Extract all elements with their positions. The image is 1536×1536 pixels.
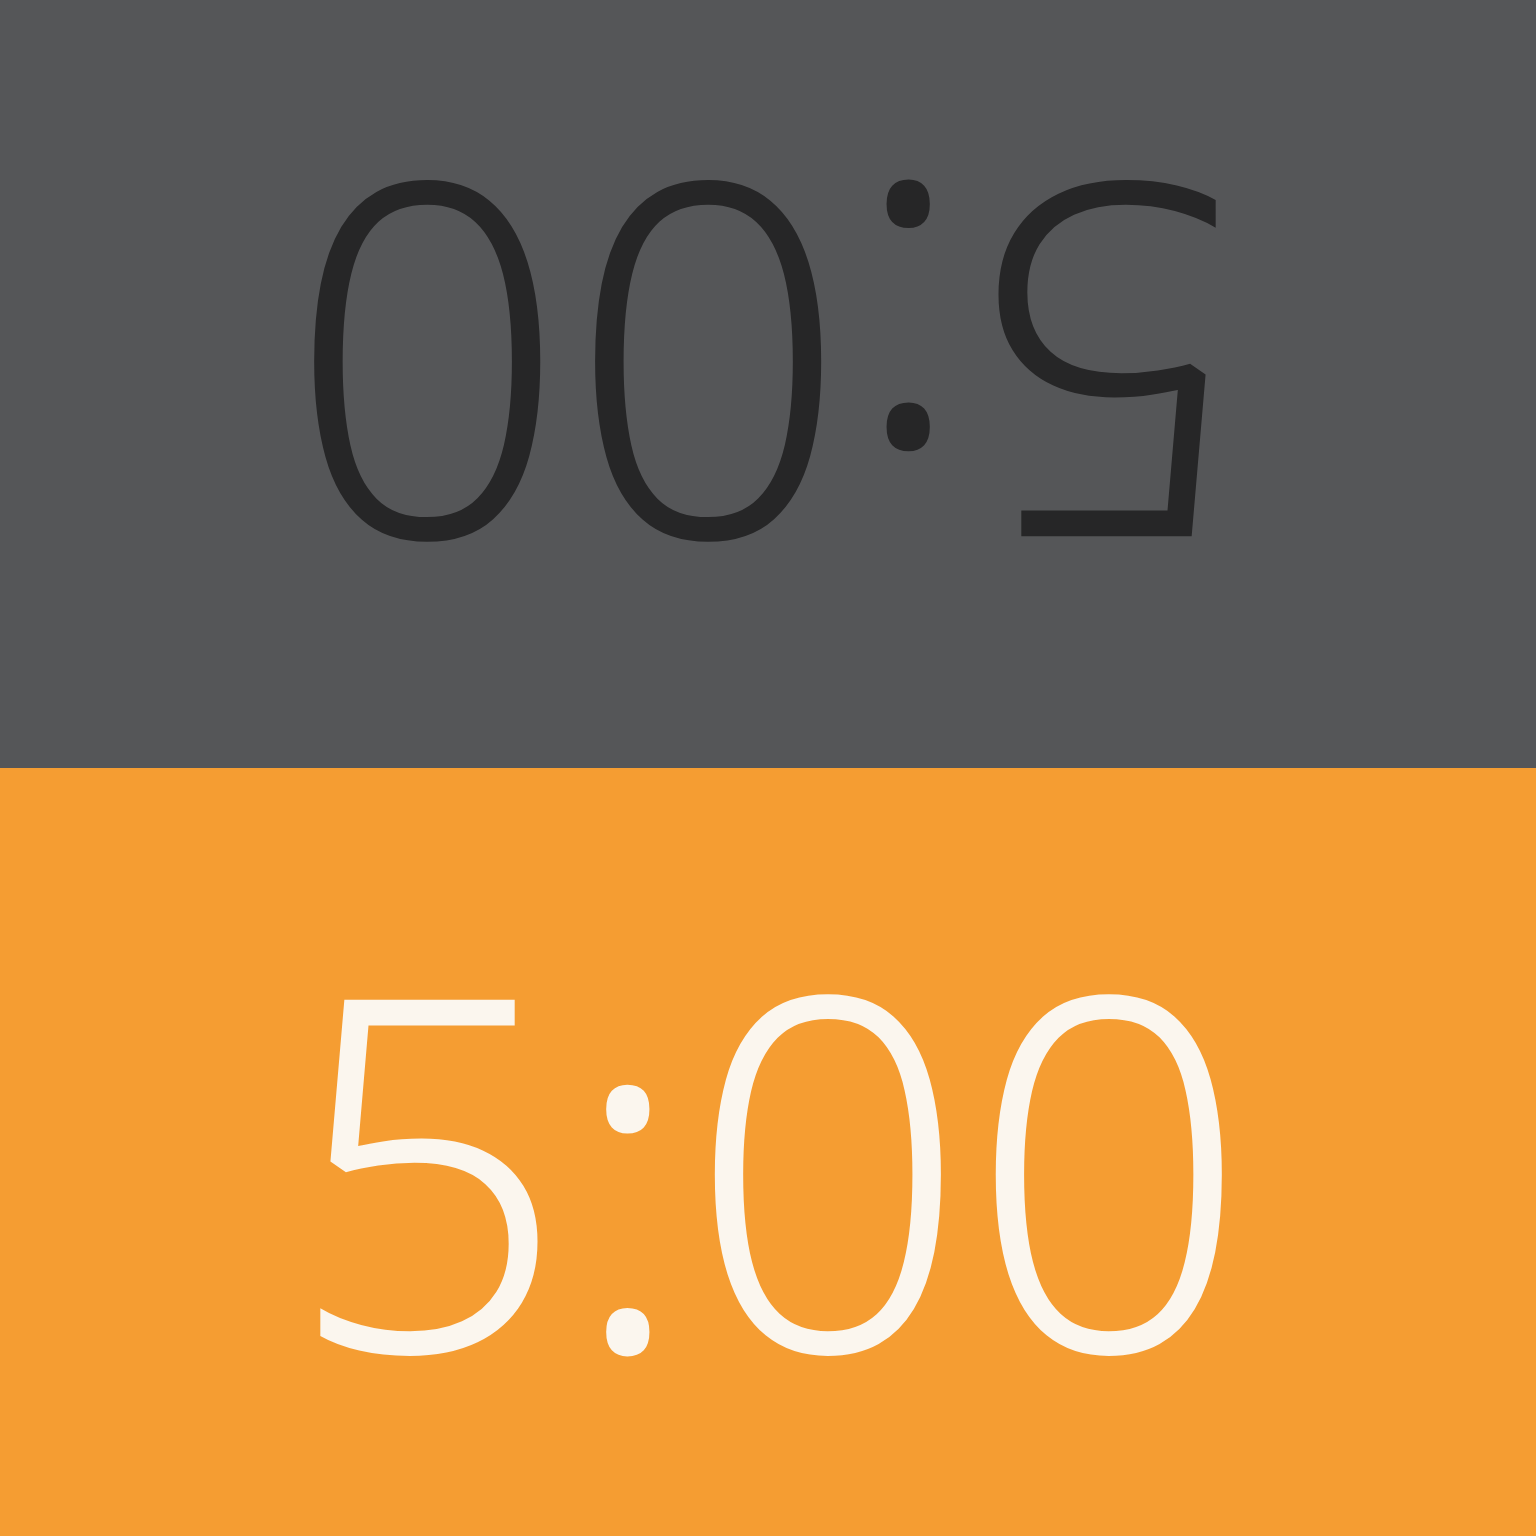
staticText: 5:00 <box>0 41 1536 711</box>
staticText: 5:00 <box>0 825 1536 1495</box>
button[interactable]: Opponent timer 5:00, tap to start <box>0 0 1536 768</box>
button[interactable]: Your timer 5:00, tap to start <box>0 768 1536 1536</box>
